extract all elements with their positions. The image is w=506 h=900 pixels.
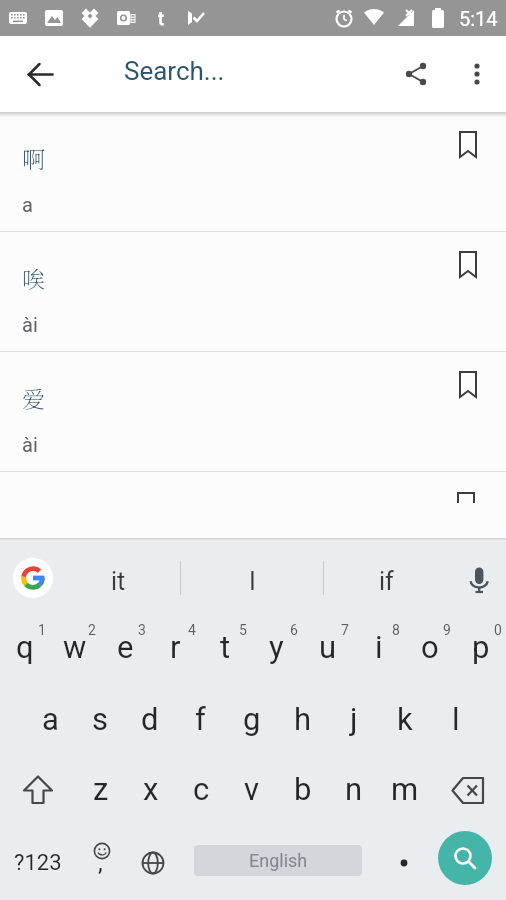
button[interactable]: s [75, 686, 125, 756]
staticText: t [220, 629, 231, 665]
staticText: o [421, 629, 439, 665]
staticText: it [111, 567, 126, 596]
staticText: 7 [341, 622, 349, 638]
button[interactable] [0, 540, 56, 616]
staticText: l [452, 701, 460, 737]
staticText: 爱 [22, 382, 45, 415]
button[interactable]: g [226, 686, 277, 756]
button[interactable] [452, 366, 484, 398]
staticText: v [244, 771, 260, 807]
button[interactable]: w [50, 616, 100, 686]
staticText: 1 [38, 622, 46, 638]
button[interactable] [392, 46, 448, 102]
staticText: m [391, 771, 419, 807]
button[interactable]: m [379, 756, 430, 826]
button[interactable]: u [302, 616, 353, 686]
button[interactable]: , [76, 826, 128, 900]
button[interactable] [430, 756, 506, 826]
button[interactable]: it [56, 540, 180, 616]
staticText: e [117, 629, 134, 665]
staticText: n [345, 771, 363, 807]
button[interactable]: y [251, 616, 302, 686]
button[interactable]: 唉 [0, 232, 506, 352]
staticText: r [170, 629, 181, 665]
staticText: g [243, 701, 261, 737]
staticText: 4 [188, 622, 196, 638]
button[interactable]: l [430, 686, 481, 756]
button[interactable] [0, 756, 76, 826]
button[interactable]: 啊 [0, 112, 506, 232]
button[interactable]: p [455, 616, 506, 686]
button[interactable]: k [379, 686, 430, 756]
staticText: a [22, 193, 33, 216]
button[interactable] [448, 45, 506, 103]
staticText: 啊 [22, 142, 45, 175]
button[interactable]: i [353, 616, 404, 686]
staticText: c [193, 771, 210, 807]
button[interactable]: English [194, 845, 362, 876]
button[interactable] [128, 826, 178, 900]
staticText: ài [22, 433, 38, 456]
staticText: t [158, 8, 164, 28]
staticText: 5 [239, 622, 247, 638]
staticText: z [93, 771, 109, 807]
staticText: s [92, 701, 108, 737]
button[interactable]: o [404, 616, 455, 686]
button[interactable]: I [181, 540, 323, 616]
staticText: b [294, 771, 312, 807]
staticText: 0 [494, 622, 502, 638]
button[interactable]: a [25, 686, 75, 756]
button[interactable]: e [100, 616, 150, 686]
button[interactable]: if [324, 540, 448, 616]
button[interactable]: t [200, 616, 251, 686]
button[interactable]: j [328, 686, 379, 756]
button[interactable] [438, 831, 492, 885]
staticText: 8 [392, 622, 400, 638]
button[interactable]: r [150, 616, 200, 686]
staticText: 唉 [22, 262, 45, 295]
staticText: 2 [88, 622, 96, 638]
button[interactable]: c [176, 756, 226, 826]
button[interactable]: Search... [122, 59, 392, 89]
button[interactable]: ?123 [0, 826, 76, 900]
button[interactable]: q [0, 616, 50, 686]
button[interactable] [448, 540, 506, 616]
staticText: Search... [124, 56, 225, 86]
staticText: 3 [138, 622, 146, 638]
staticText: y [269, 629, 284, 665]
staticText: , [98, 849, 103, 877]
button[interactable] [378, 826, 430, 900]
staticText: j [350, 701, 358, 737]
staticText: a [42, 701, 59, 737]
staticText: h [294, 701, 312, 737]
staticText: u [319, 629, 337, 665]
button[interactable]: n [328, 756, 379, 826]
staticText: English [249, 850, 308, 871]
button[interactable]: h [277, 686, 328, 756]
staticText: k [397, 701, 413, 737]
button[interactable]: f [175, 686, 226, 756]
button[interactable] [452, 126, 484, 158]
staticText: p [472, 629, 490, 665]
button[interactable]: x [126, 756, 176, 826]
button[interactable] [452, 246, 484, 278]
staticText: w [63, 629, 87, 665]
staticText: i [375, 629, 383, 665]
button[interactable]: z [76, 756, 126, 826]
staticText: f [195, 701, 206, 737]
staticText: 6 [290, 622, 298, 638]
staticText: if [379, 567, 394, 596]
staticText: ài [22, 313, 38, 336]
staticText: I [249, 567, 256, 596]
button[interactable]: 爱 [0, 352, 506, 472]
button[interactable]: d [125, 686, 175, 756]
staticText: x [143, 771, 159, 807]
staticText: 9 [443, 622, 451, 638]
staticText: d [141, 701, 159, 737]
staticText: 5:14 [459, 7, 498, 30]
button[interactable]: v [226, 756, 277, 826]
staticText: q [16, 629, 34, 665]
button[interactable]: b [277, 756, 328, 826]
staticText: ?123 [14, 850, 62, 876]
button[interactable] [13, 47, 67, 101]
